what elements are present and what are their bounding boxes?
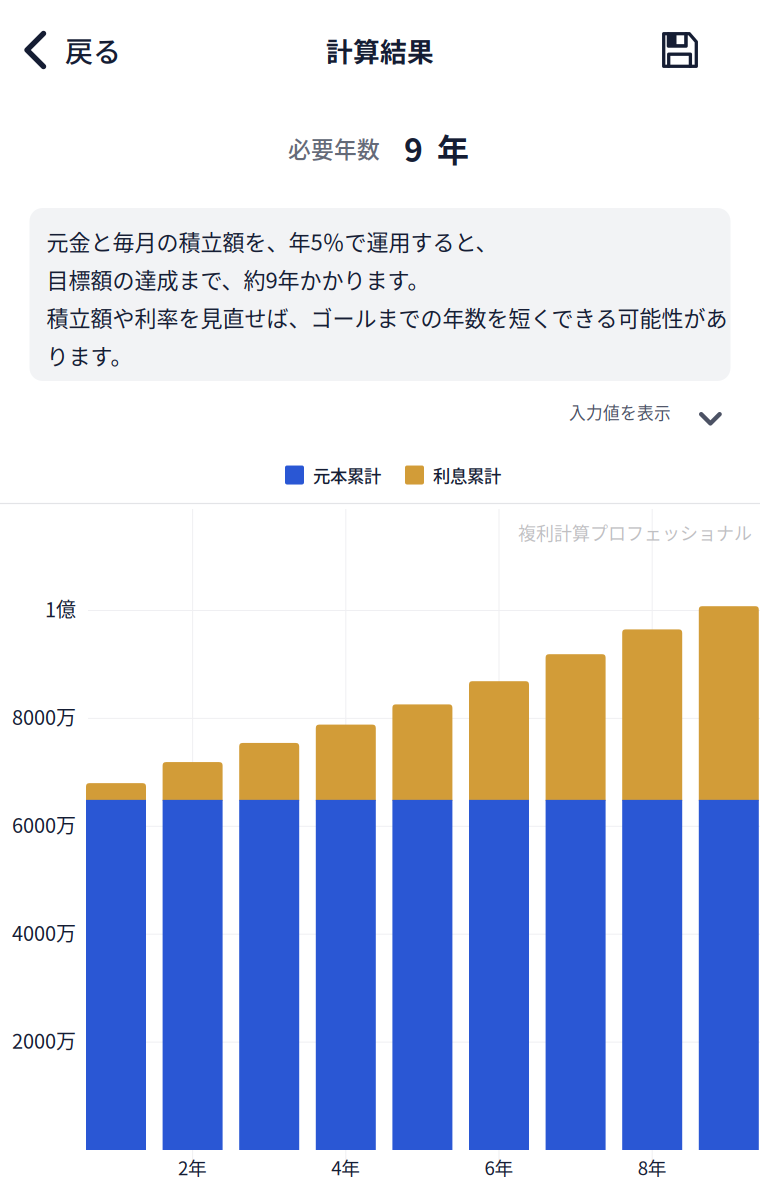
staticText: 8年 bbox=[638, 1153, 667, 1180]
staticText: 戻る bbox=[65, 30, 121, 70]
staticText: 複利計算プロフェッショナル bbox=[518, 519, 752, 546]
staticText: 9 年 bbox=[404, 125, 469, 171]
staticText: 4年 bbox=[331, 1153, 360, 1180]
staticText: 利息累計 bbox=[433, 462, 501, 488]
staticText: ります。 bbox=[46, 339, 132, 371]
staticText: 4000万 bbox=[12, 918, 76, 947]
staticText: 元金と毎月の積立額を、年5％で運用すると、 bbox=[46, 225, 497, 257]
staticText: 8000万 bbox=[12, 702, 76, 731]
button[interactable]: 保存 bbox=[644, 14, 716, 86]
staticText: 入力値を表示 bbox=[569, 400, 671, 424]
staticText: 6000万 bbox=[12, 810, 76, 839]
staticText: 6年 bbox=[484, 1153, 513, 1180]
staticText: 1億 bbox=[45, 594, 76, 623]
staticText: 必要年数 bbox=[288, 132, 380, 164]
button[interactable]: 戻る bbox=[0, 14, 133, 86]
staticText: 2000万 bbox=[12, 1026, 76, 1055]
staticText: 積立額や利率を見直せば、ゴールまでの年数を短くできる可能性があ bbox=[46, 301, 727, 333]
staticText: 目標額の達成まで、約9年かかります。 bbox=[46, 263, 429, 295]
staticText: 計算結果 bbox=[326, 31, 434, 69]
button[interactable]: 入力値を表示 bbox=[0, 391, 760, 433]
staticText: 元本累計 bbox=[313, 462, 381, 488]
staticText: 2年 bbox=[178, 1153, 207, 1180]
